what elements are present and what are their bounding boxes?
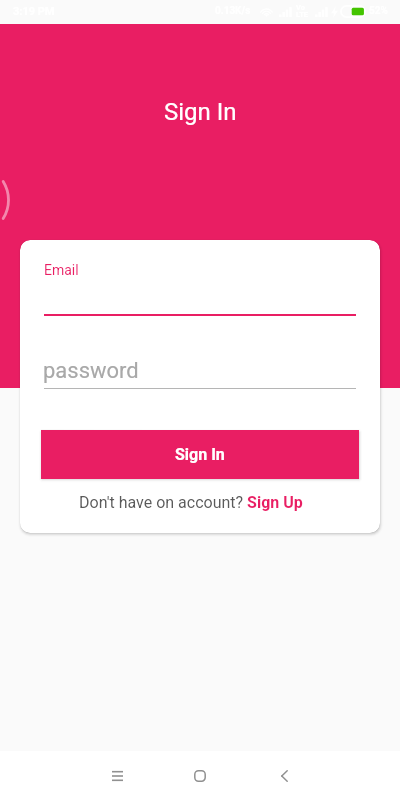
staticText: Email xyxy=(44,262,79,278)
button[interactable]: Sign In xyxy=(41,430,359,479)
button[interactable]: password xyxy=(44,350,356,389)
staticText: Sign In xyxy=(164,98,237,126)
button[interactable]: Back xyxy=(260,751,309,800)
staticText: Don't have on account? Sign Up xyxy=(79,493,303,512)
button[interactable]: Email xyxy=(44,254,356,316)
staticText: Sign In xyxy=(175,445,225,464)
button[interactable]: Don't have on account? Sign Up xyxy=(20,488,371,516)
staticText: password xyxy=(43,358,139,384)
button[interactable]: Recents xyxy=(93,751,142,800)
button[interactable]: Home xyxy=(175,751,224,800)
